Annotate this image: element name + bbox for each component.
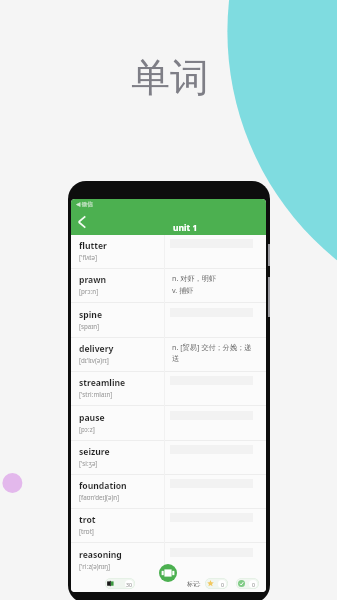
button[interactable]: Back	[73, 213, 91, 231]
staticText: n. [贸易] 交付；分娩；递	[172, 342, 252, 352]
staticText: [dɪ'lɪv(ə)rɪ]	[79, 356, 109, 364]
staticText: [prɔːn]	[79, 287, 99, 295]
staticText: [pɔːz]	[79, 425, 95, 433]
staticText: 送	[172, 354, 180, 363]
staticText: trot	[79, 514, 96, 526]
button[interactable]: Flashcards	[159, 564, 177, 582]
staticText: reasoning	[79, 549, 122, 561]
staticText: 标记:	[187, 580, 201, 588]
button[interactable]: 0	[205, 578, 228, 589]
staticText: streamline	[79, 377, 126, 389]
button[interactable]: 30	[105, 578, 135, 589]
staticText: 0	[252, 581, 255, 588]
button[interactable]: trot	[71, 509, 266, 543]
staticText: v. 捕虾	[172, 285, 194, 295]
staticText: [spaɪn]	[79, 322, 100, 330]
staticText: delivery	[79, 343, 114, 355]
button[interactable]: seizure	[71, 441, 266, 475]
staticText: ◀ 微信	[76, 200, 93, 208]
button[interactable]: delivery	[71, 338, 266, 372]
button[interactable]: pause	[71, 407, 266, 441]
staticText: ['riːz(ə)nɪŋ]	[79, 562, 111, 570]
staticText: ['striːmlaɪn]	[79, 390, 113, 398]
staticText: 单词	[131, 53, 209, 102]
staticText: foundation	[79, 480, 127, 492]
button[interactable]: flutter	[71, 235, 266, 269]
staticText: seizure	[79, 446, 110, 458]
staticText: n. 对虾，明虾	[172, 273, 217, 283]
staticText: 0	[221, 581, 224, 588]
staticText: 30	[126, 581, 132, 588]
staticText: ['flʌtə]	[79, 253, 98, 261]
staticText: spine	[79, 309, 103, 321]
button[interactable]: spine	[71, 304, 266, 338]
staticText: unit 1	[173, 222, 198, 234]
staticText: ['siːʒə]	[79, 459, 98, 467]
button[interactable]: prawn	[71, 269, 266, 303]
staticText: prawn	[79, 274, 107, 286]
staticText: flutter	[79, 240, 107, 252]
button[interactable]: streamline	[71, 372, 266, 406]
button[interactable]: reasoning	[71, 544, 266, 578]
button[interactable]: foundation	[71, 475, 266, 509]
staticText: [trɒt]	[79, 527, 94, 535]
staticText: pause	[79, 412, 105, 424]
button[interactable]: 0	[236, 578, 259, 589]
staticText: [faʊn'deɪʃ(ə)n]	[79, 493, 120, 501]
